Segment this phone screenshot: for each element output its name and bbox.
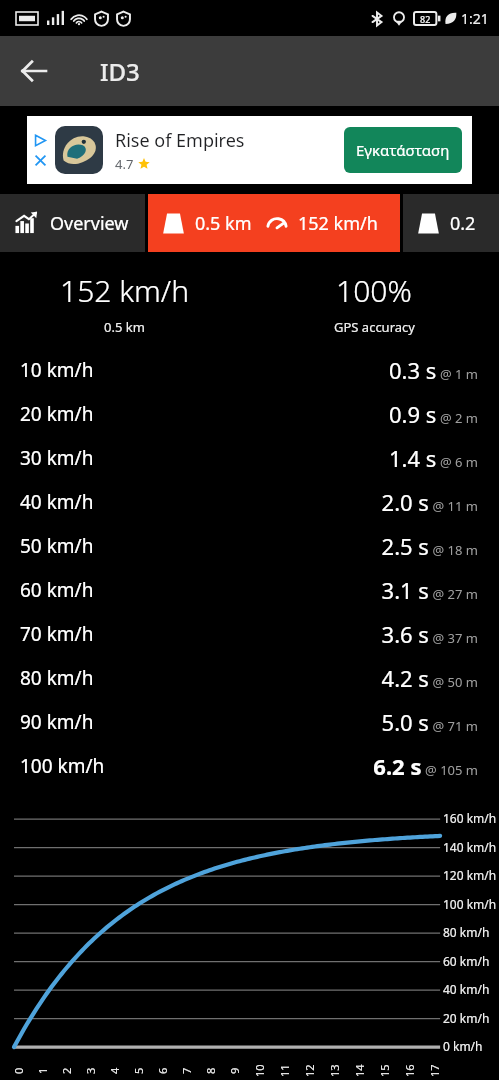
staticText: 90 km/h — [20, 709, 94, 735]
staticText: 0.2 km — [450, 211, 499, 236]
staticText: ID3 — [100, 55, 140, 88]
staticText: 0 — [11, 1067, 26, 1074]
staticText: 3.1 s @ 27 m — [381, 575, 478, 605]
button[interactable]: 40 km/h — [0, 480, 499, 524]
staticText: 14 — [352, 1064, 367, 1077]
staticText: 9 — [227, 1067, 242, 1074]
button[interactable]: Overview — [0, 194, 145, 252]
staticText: 100 km/h — [443, 896, 497, 912]
staticText: 4.7 — [115, 155, 134, 173]
staticText: 1:21 — [461, 9, 489, 28]
staticText: 12 — [302, 1064, 317, 1077]
staticText: 10 km/h — [20, 357, 94, 383]
staticText: 10 — [252, 1064, 267, 1077]
staticText: 160 km/h — [443, 810, 497, 826]
staticText: 50 km/h — [20, 533, 94, 559]
staticText: 140 km/h — [443, 839, 497, 855]
staticText: 0.5 km — [104, 318, 145, 336]
staticText: 40 km/h — [443, 981, 490, 997]
staticText: Overview — [50, 211, 129, 236]
staticText: 3.6 s @ 37 m — [381, 619, 478, 649]
staticText: 0 km/h — [443, 1038, 483, 1054]
staticText: Rise of Empires — [115, 128, 245, 153]
staticText: 20 km/h — [443, 1010, 490, 1026]
staticText: 17 — [427, 1064, 442, 1077]
staticText: 0.3 s @ 1 m — [388, 355, 478, 385]
staticText: 7 — [179, 1067, 194, 1074]
staticText: 70 km/h — [20, 621, 94, 647]
button[interactable]: 100 km/h — [0, 744, 499, 788]
button[interactable]: 10 km/h — [0, 348, 499, 392]
staticText: 6.2 s @ 105 m — [373, 751, 478, 781]
staticText: 40 km/h — [20, 489, 94, 515]
button[interactable]: 0.2 km — [403, 194, 499, 252]
staticText: 60 km/h — [443, 953, 490, 969]
staticText: 5 — [131, 1067, 146, 1074]
staticText: 6 — [155, 1067, 170, 1074]
button[interactable]: 50 km/h — [0, 524, 499, 568]
staticText: 11 — [277, 1064, 292, 1077]
staticText: 80 km/h — [20, 665, 94, 691]
staticText: 13 — [327, 1064, 342, 1077]
staticText: 2 — [59, 1067, 74, 1074]
staticText: 1.4 s @ 6 m — [388, 443, 478, 473]
staticText: GPS accuracy — [334, 318, 415, 336]
staticText: 120 km/h — [443, 867, 497, 883]
button[interactable]: 20 km/h — [0, 392, 499, 436]
staticText: 1 — [35, 1067, 50, 1074]
staticText: 2.0 s @ 11 m — [381, 487, 478, 517]
staticText: 100 km/h — [20, 753, 105, 779]
button[interactable]: Εγκατάσταση — [344, 127, 462, 173]
staticText: 4 — [107, 1067, 122, 1074]
button[interactable]: 30 km/h — [0, 436, 499, 480]
staticText: 30 km/h — [20, 445, 94, 471]
staticText: 100% — [336, 270, 412, 311]
staticText: 2.5 s @ 18 m — [381, 531, 478, 561]
staticText: 4.2 s @ 50 m — [381, 663, 478, 693]
staticText: 8 — [203, 1067, 218, 1074]
staticText: 15 — [377, 1064, 392, 1077]
button[interactable]: 0.5 km — [148, 194, 400, 252]
staticText: Εγκατάσταση — [356, 140, 450, 160]
staticText: 0.9 s @ 2 m — [388, 399, 478, 429]
button[interactable]: Rise of Empires — [27, 116, 472, 184]
button[interactable]: Back — [8, 45, 60, 97]
staticText: 20 km/h — [20, 401, 94, 427]
button[interactable]: 70 km/h — [0, 612, 499, 656]
staticText: 60 km/h — [20, 577, 94, 603]
staticText: 16 — [402, 1064, 417, 1077]
staticText: 152 km/h — [298, 211, 378, 236]
staticText: 5.0 s @ 71 m — [381, 707, 478, 737]
button[interactable]: 90 km/h — [0, 700, 499, 744]
button[interactable]: 80 km/h — [0, 656, 499, 700]
button[interactable]: 60 km/h — [0, 568, 499, 612]
staticText: 152 km/h — [60, 270, 190, 311]
staticText: 82 — [420, 13, 431, 25]
staticText: 3 — [83, 1067, 98, 1074]
staticText: 80 km/h — [443, 924, 490, 940]
staticText: 0.5 km — [195, 211, 252, 236]
